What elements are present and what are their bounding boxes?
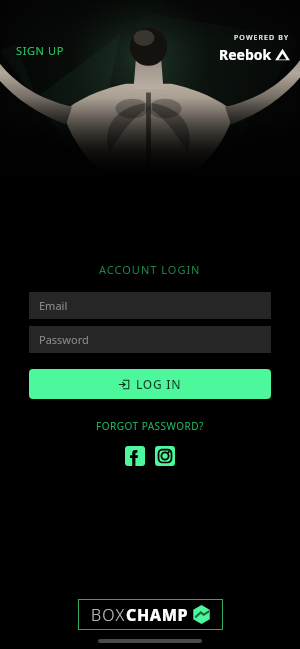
staticText: Password: [39, 332, 89, 347]
button[interactable]: FORGOT PASSWORD?: [92, 417, 208, 435]
button[interactable]: Sign in with Facebook: [125, 446, 145, 466]
button[interactable]: SIGN UP: [14, 40, 66, 61]
staticText: CHAMP: [126, 604, 189, 626]
button[interactable]: BOX: [78, 599, 223, 630]
button[interactable]: Password: [29, 326, 271, 353]
staticText: LOG IN: [136, 376, 182, 392]
button[interactable]: Email: [29, 292, 271, 319]
staticText: POWERED BY: [234, 33, 290, 43]
staticText: Reebok: [219, 45, 272, 64]
staticText: Email: [39, 298, 68, 313]
staticText: FORGOT PASSWORD?: [96, 419, 204, 433]
staticText: BOX: [91, 604, 126, 626]
button[interactable]: Sign in with Instagram: [155, 446, 175, 466]
button[interactable]: LOG IN: [29, 369, 271, 399]
staticText: ACCOUNT LOGIN: [99, 262, 201, 277]
staticText: SIGN UP: [16, 43, 64, 58]
